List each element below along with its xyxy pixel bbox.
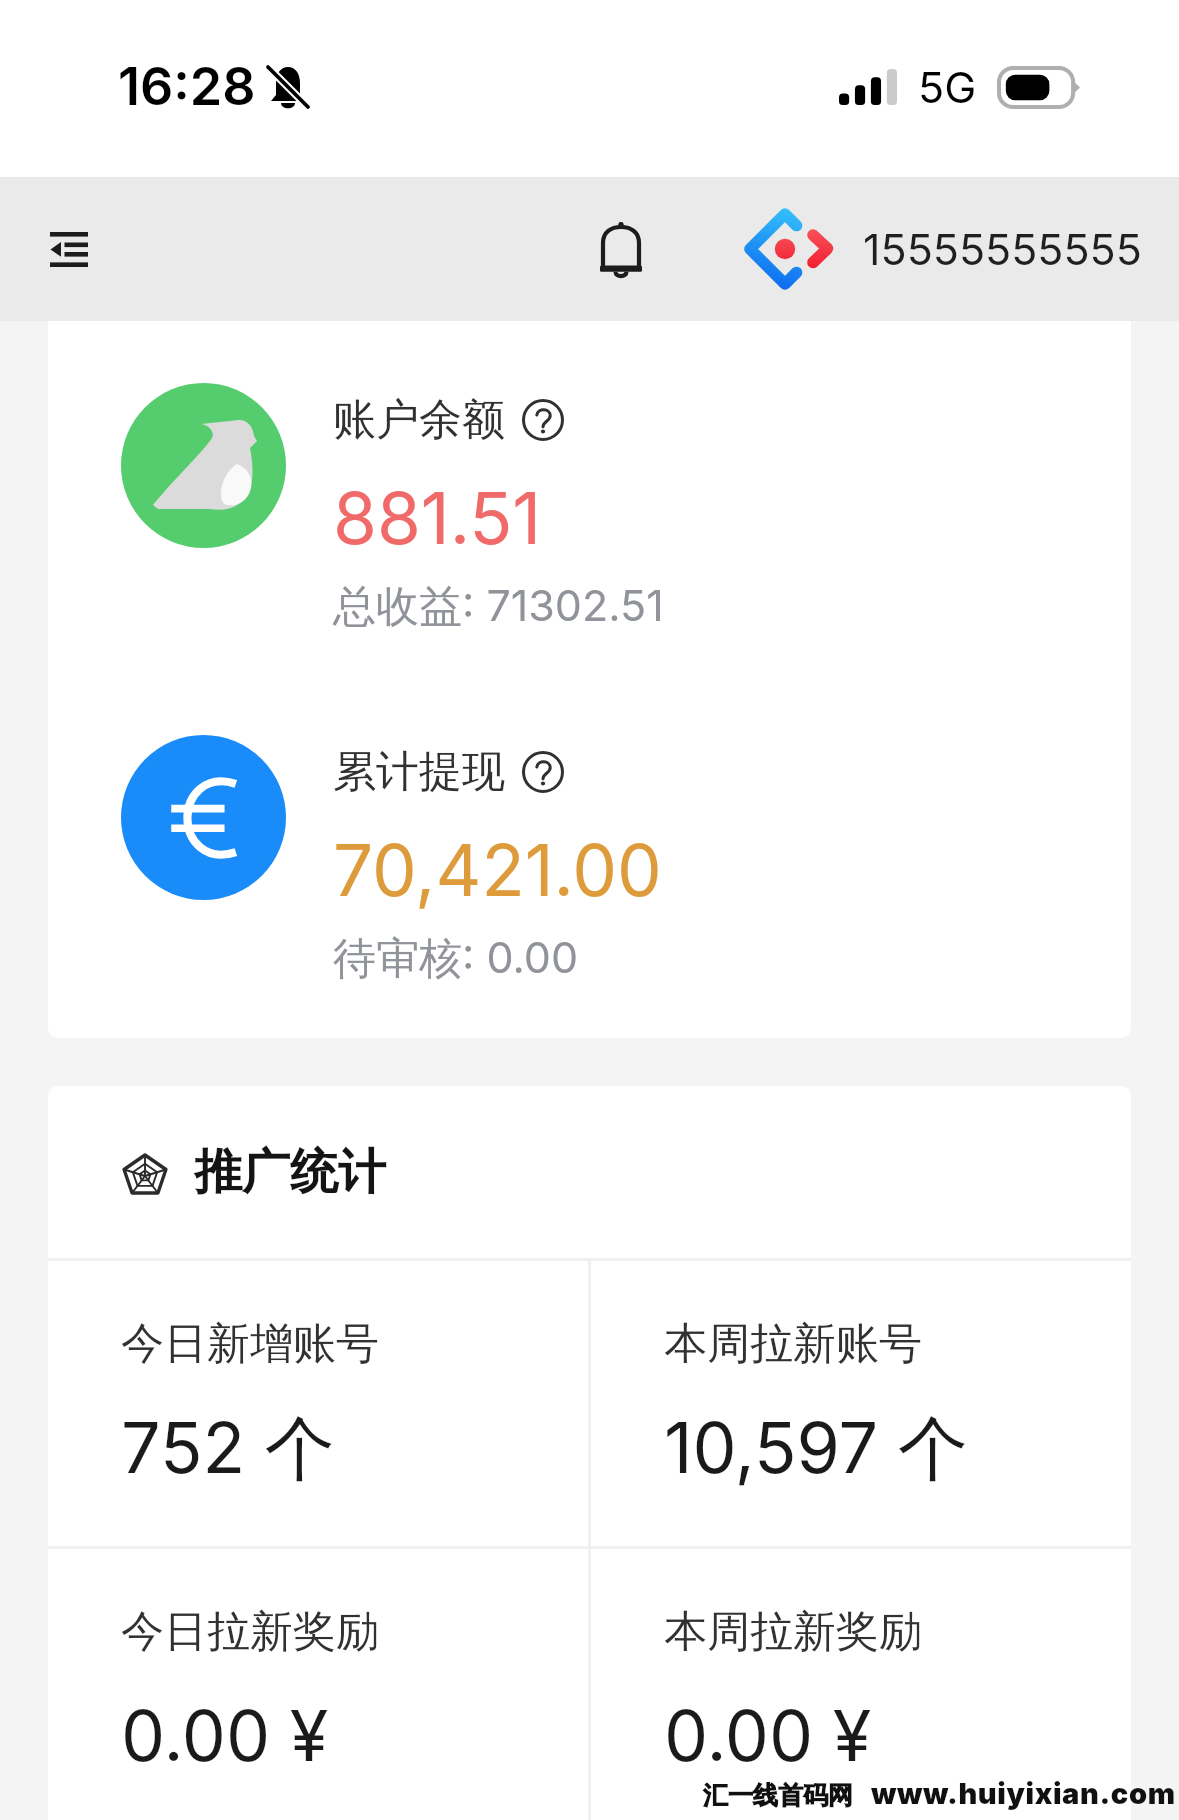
staticText: 账户余额: [333, 393, 505, 447]
button[interactable]: 账户余额: [48, 383, 1131, 633]
staticText: 0.00 ¥: [121, 1693, 329, 1778]
staticText: 70,421.00: [333, 827, 662, 913]
staticText: 16:28: [118, 55, 256, 118]
staticText: 今日新增账号: [121, 1317, 379, 1371]
button[interactable]: 本周拉新奖励: [591, 1549, 1131, 1820]
staticText: 881.51: [333, 475, 542, 561]
staticText: 待审核: 0.00: [333, 931, 579, 985]
button[interactable]: 本周拉新账号: [591, 1261, 1131, 1546]
button[interactable]: 15555555555: [743, 207, 1142, 291]
staticText: 汇一线首码网: [703, 1780, 853, 1811]
button[interactable]: Help: [517, 746, 569, 798]
staticText: www.huiyixian.com: [871, 1776, 1176, 1811]
staticText: 总收益: 71302.51: [333, 579, 664, 633]
staticText: 累计提现: [333, 745, 505, 799]
staticText: 752 个: [121, 1405, 335, 1494]
staticText: 今日拉新奖励: [121, 1605, 379, 1659]
button[interactable]: 今日拉新奖励: [48, 1549, 588, 1820]
button[interactable]: Help: [517, 394, 569, 446]
staticText: 本周拉新账号: [664, 1317, 922, 1371]
button[interactable]: Menu: [22, 202, 116, 296]
staticText: 推广统计: [194, 1142, 386, 1202]
staticText: 15555555555: [863, 223, 1142, 275]
button[interactable]: Notifications: [573, 201, 669, 297]
button[interactable]: 今日新增账号: [48, 1261, 588, 1546]
staticText: 本周拉新奖励: [664, 1605, 922, 1659]
button[interactable]: 推广统计: [48, 1086, 1131, 1258]
button[interactable]: 累计提现: [48, 735, 1131, 985]
staticText: 10,597 个: [664, 1405, 968, 1494]
staticText: 0.00 ¥: [664, 1693, 872, 1778]
staticText: 5G: [918, 61, 977, 113]
